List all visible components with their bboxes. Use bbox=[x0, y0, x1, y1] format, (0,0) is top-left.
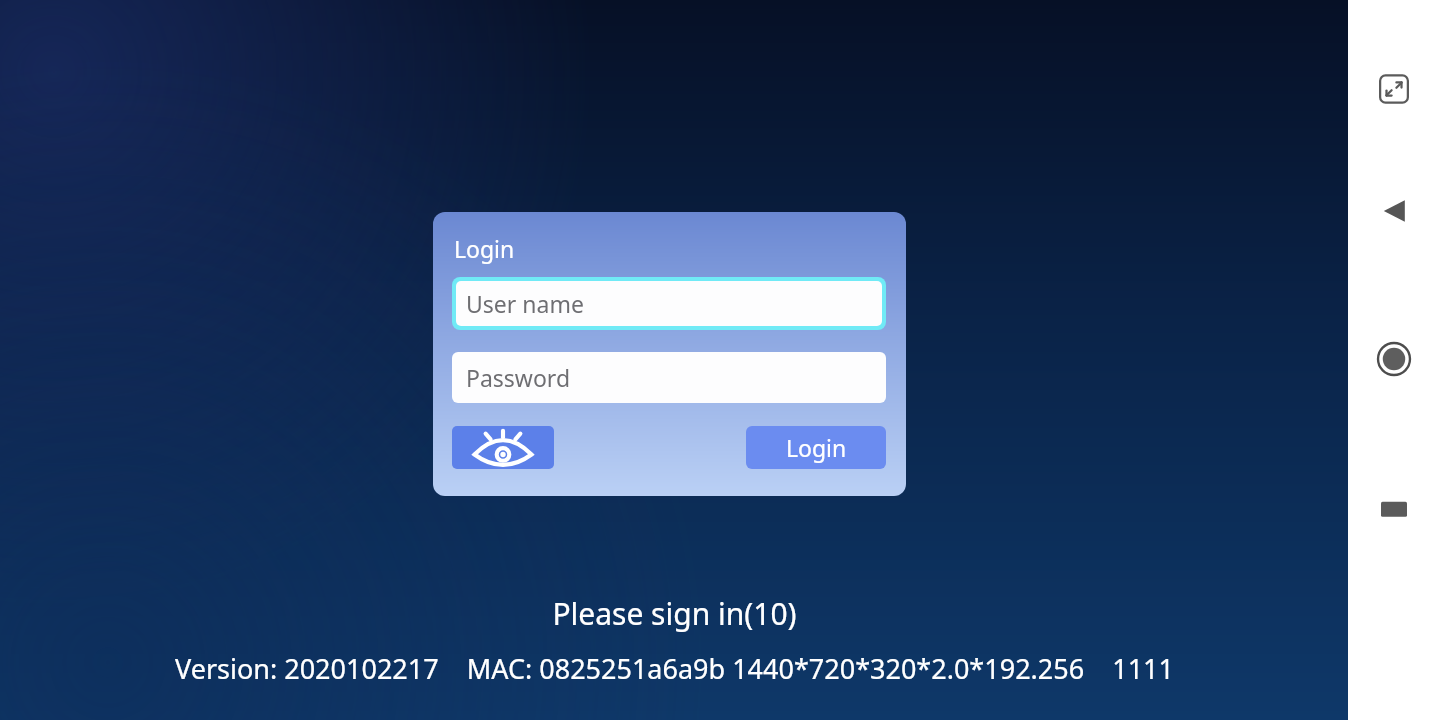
staticText: Version: 2020102217 MAC: 0825251a6a9b 14… bbox=[175, 650, 1174, 687]
button[interactable]: User name bbox=[452, 277, 886, 330]
button[interactable]: Expand bbox=[1371, 66, 1417, 112]
staticText: Password bbox=[466, 362, 571, 393]
button[interactable]: Home bbox=[1371, 336, 1417, 382]
staticText: Please sign in(10) bbox=[552, 593, 797, 634]
staticText: Login bbox=[786, 432, 847, 463]
staticText: Login bbox=[454, 233, 515, 264]
button[interactable]: Recents bbox=[1371, 486, 1417, 532]
staticText: User name bbox=[466, 288, 584, 319]
button[interactable]: Password bbox=[452, 352, 886, 403]
button[interactable]: Back bbox=[1371, 188, 1417, 234]
button[interactable]: Show password bbox=[452, 426, 554, 469]
button[interactable]: Login bbox=[746, 426, 886, 469]
